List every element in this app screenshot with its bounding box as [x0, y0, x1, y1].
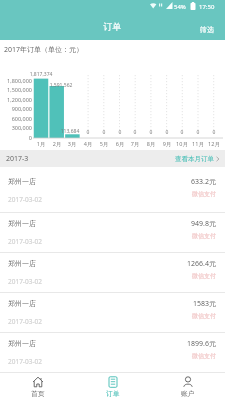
staticText: 1,800,000	[1, 77, 32, 84]
staticText: 0	[172, 129, 192, 136]
staticText: 查看本月订单	[175, 155, 214, 163]
staticText: 0	[78, 129, 98, 136]
staticText: 8月	[141, 140, 161, 148]
button[interactable]: 首页	[0, 373, 75, 398]
button[interactable]: 筛选	[200, 25, 214, 34]
staticText: 2月	[47, 140, 67, 148]
staticText: 筛选	[200, 25, 214, 34]
staticText: 0	[110, 129, 130, 136]
staticText: 微信支付	[120, 232, 216, 240]
staticText: 0	[125, 129, 145, 136]
staticText: 0	[157, 129, 177, 136]
staticText: 0	[1, 134, 32, 141]
staticText: 2017-03-02	[8, 317, 42, 326]
staticText: 首页	[31, 389, 45, 398]
staticText: 微信支付	[120, 352, 216, 360]
button[interactable]: 郑州一店	[0, 167, 225, 213]
staticText: 0	[141, 129, 161, 136]
staticText: 0	[188, 129, 208, 136]
staticText: 订单	[106, 389, 120, 398]
staticText: 郑州一店	[8, 219, 36, 228]
staticText: 10月	[172, 140, 192, 148]
staticText: 订单	[0, 21, 225, 32]
staticText: 5月	[94, 140, 114, 148]
staticText: 3月	[62, 140, 82, 148]
staticText: 4月	[78, 140, 98, 148]
button[interactable]: 订单	[75, 373, 150, 398]
button[interactable]: 郑州一店	[0, 333, 225, 373]
staticText: 1583元	[120, 299, 216, 309]
staticText: 300,000	[1, 124, 32, 131]
staticText: 微信支付	[120, 312, 216, 320]
staticText: 6月	[110, 140, 130, 148]
staticText: 600,000	[1, 115, 32, 122]
staticText: 1月	[31, 140, 51, 148]
staticText: 2017年订单（单位：元）	[4, 45, 84, 55]
staticText: 2017-03-02	[8, 357, 42, 366]
staticText: 2017-03-02	[8, 195, 42, 204]
staticText: 郑州一店	[8, 299, 36, 308]
staticText: 1266.4元	[120, 259, 216, 269]
staticText: 微信支付	[120, 190, 216, 198]
button[interactable]: 查看本月订单	[175, 155, 220, 163]
staticText: 微信支付	[120, 272, 216, 280]
staticText: 17:50	[199, 3, 215, 11]
staticText: 12月	[204, 140, 224, 148]
button[interactable]: 郑州一店	[0, 213, 225, 253]
staticText: 2017-3	[6, 154, 29, 164]
staticText: 1899.6元	[120, 339, 216, 349]
staticText: 633.2元	[120, 177, 216, 187]
staticText: 113,684	[50, 128, 90, 135]
staticText: 1,591,562	[41, 82, 81, 89]
staticText: 9月	[157, 140, 177, 148]
staticText: 1,500,000	[1, 86, 32, 93]
staticText: 1,817,374	[21, 71, 61, 78]
staticText: 0	[94, 129, 114, 136]
button[interactable]: 账户	[150, 373, 225, 398]
staticText: 2017-03-02	[8, 237, 42, 246]
staticText: 54%	[174, 3, 186, 11]
staticText: 0	[204, 129, 224, 136]
staticText: 11月	[188, 140, 208, 148]
staticText: 900,000	[1, 105, 32, 112]
button[interactable]: 郑州一店	[0, 253, 225, 293]
staticText: 郑州一店	[8, 177, 36, 186]
staticText: 2017-03-02	[8, 277, 42, 286]
staticText: 949.8元	[120, 219, 216, 229]
staticText: 账户	[181, 389, 195, 398]
staticText: 郑州一店	[8, 259, 36, 268]
staticText: 7月	[125, 140, 145, 148]
staticText: 1,200,000	[1, 96, 32, 103]
button[interactable]: 郑州一店	[0, 293, 225, 333]
staticText: 郑州一店	[8, 339, 36, 348]
